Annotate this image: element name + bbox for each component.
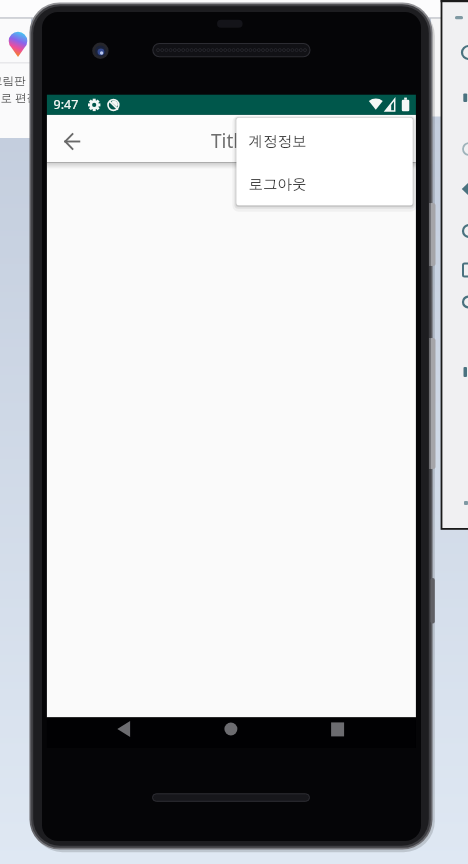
button[interactable]	[452, 290, 468, 314]
button[interactable]	[309, 718, 369, 748]
button[interactable]	[452, 219, 468, 243]
button[interactable]	[88, 718, 148, 748]
button[interactable]	[452, 40, 468, 64]
button[interactable]	[236, 118, 413, 162]
button[interactable]	[0, 68, 29, 84]
button[interactable]	[0, 90, 29, 106]
button[interactable]	[452, 138, 468, 162]
button[interactable]	[452, 84, 468, 108]
button[interactable]	[236, 162, 413, 206]
button[interactable]	[203, 718, 263, 748]
button[interactable]	[452, 177, 468, 201]
button[interactable]	[46, 116, 94, 163]
button[interactable]	[452, 258, 468, 282]
